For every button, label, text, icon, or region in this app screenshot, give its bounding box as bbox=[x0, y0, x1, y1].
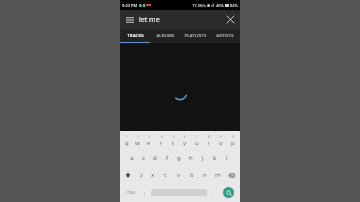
staticText: 17.5K/s bbox=[192, 3, 206, 8]
button[interactable]: h bbox=[185, 150, 197, 166]
button[interactable]: 6 bbox=[179, 133, 191, 149]
button[interactable]: c bbox=[159, 167, 172, 183]
staticText: l bbox=[226, 154, 228, 162]
button[interactable]: Symbols bbox=[121, 184, 140, 200]
button[interactable]: s bbox=[137, 150, 149, 166]
button[interactable]: x bbox=[147, 167, 159, 183]
button[interactable]: b bbox=[185, 167, 198, 183]
staticText: m bbox=[215, 171, 221, 179]
button[interactable]: Backspace bbox=[224, 167, 239, 183]
staticText: c bbox=[164, 171, 167, 179]
staticText: b bbox=[190, 171, 194, 179]
button[interactable]: ARTISTS bbox=[210, 29, 240, 42]
staticText: x bbox=[151, 171, 155, 179]
staticText: 5 bbox=[173, 135, 175, 139]
button[interactable]: 5 bbox=[167, 133, 179, 149]
button[interactable]: TRACKS bbox=[120, 29, 150, 42]
staticText: k bbox=[213, 154, 217, 162]
staticText: 84% bbox=[230, 3, 238, 8]
button[interactable]: Clear search bbox=[221, 10, 240, 29]
staticText: ?123 bbox=[126, 190, 135, 195]
button[interactable]: 0 bbox=[227, 133, 239, 149]
staticText: e bbox=[147, 139, 151, 147]
button[interactable]: let me bbox=[139, 10, 221, 29]
staticText: j bbox=[202, 154, 204, 162]
staticText: p bbox=[231, 139, 235, 147]
button[interactable]: l bbox=[221, 150, 233, 166]
button[interactable]: 1 bbox=[121, 133, 132, 149]
staticText: w bbox=[135, 139, 140, 147]
button[interactable]: n bbox=[198, 167, 211, 183]
button[interactable]: v bbox=[172, 167, 185, 183]
staticText: 2 bbox=[137, 135, 139, 139]
button[interactable]: g bbox=[173, 150, 185, 166]
button[interactable]: k bbox=[209, 150, 221, 166]
staticText: h bbox=[189, 154, 193, 162]
button[interactable]: j bbox=[197, 150, 209, 166]
staticText: 4 bbox=[161, 135, 163, 139]
staticText: 0 bbox=[232, 135, 234, 139]
staticText: o bbox=[219, 139, 223, 147]
button[interactable]: Open navigation menu bbox=[120, 10, 139, 29]
staticText: n bbox=[203, 171, 207, 179]
staticText: f bbox=[166, 154, 169, 162]
staticText: y bbox=[183, 139, 187, 147]
staticText: ARTISTS bbox=[216, 33, 234, 39]
staticText: s bbox=[142, 154, 145, 162]
button[interactable]: 2 bbox=[132, 133, 143, 149]
button[interactable]: Search bbox=[223, 187, 234, 198]
button[interactable]: d bbox=[149, 150, 161, 166]
button[interactable]: 3 bbox=[143, 133, 155, 149]
button[interactable]: z bbox=[135, 167, 147, 183]
button[interactable]: a bbox=[126, 150, 137, 166]
staticText: 7 bbox=[196, 135, 198, 139]
staticText: z bbox=[140, 171, 143, 179]
staticText: 6 bbox=[184, 135, 186, 139]
button[interactable]: 9 bbox=[215, 133, 227, 149]
staticText: . bbox=[212, 188, 214, 196]
staticText: g bbox=[177, 154, 181, 162]
staticText: ALBUMS bbox=[156, 33, 175, 39]
staticText: 46% bbox=[216, 3, 224, 8]
staticText: TRACKS bbox=[127, 33, 144, 39]
staticText: PLAYLISTS bbox=[184, 33, 207, 39]
staticText: r bbox=[160, 139, 163, 147]
button[interactable]: 8 bbox=[203, 133, 215, 149]
staticText: q bbox=[125, 139, 129, 147]
staticText: 9:22 PM bbox=[122, 3, 138, 8]
button[interactable]: ALBUMS bbox=[150, 29, 180, 42]
staticText: u bbox=[195, 139, 199, 147]
button[interactable]: m bbox=[211, 167, 224, 183]
staticText: t bbox=[172, 139, 175, 147]
staticText: , bbox=[144, 188, 146, 196]
staticText: 1 bbox=[126, 135, 128, 139]
button[interactable]: PLAYLISTS bbox=[180, 29, 210, 42]
staticText: v bbox=[177, 171, 181, 179]
staticText: let me bbox=[139, 15, 160, 25]
staticText: 9 bbox=[220, 135, 222, 139]
button[interactable]: . bbox=[208, 184, 218, 200]
staticText: 3 bbox=[148, 135, 150, 139]
staticText: i bbox=[208, 139, 210, 147]
button[interactable]: 7 bbox=[191, 133, 203, 149]
button[interactable]: Shift bbox=[121, 167, 135, 183]
button[interactable]: , bbox=[140, 184, 150, 200]
button[interactable]: 4 bbox=[155, 133, 167, 149]
staticText: a bbox=[130, 154, 134, 162]
staticText: 8 bbox=[208, 135, 210, 139]
button[interactable]: f bbox=[161, 150, 173, 166]
staticText: d bbox=[153, 154, 157, 162]
